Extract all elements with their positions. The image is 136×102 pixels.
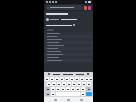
button[interactable]	[44, 50, 93, 53]
button[interactable]	[75, 77, 79, 81]
button[interactable]	[44, 47, 93, 50]
button[interactable]	[85, 77, 89, 81]
button[interactable]	[60, 77, 64, 81]
button[interactable]: Comma	[51, 92, 55, 96]
button[interactable]	[65, 77, 69, 81]
button[interactable]	[56, 87, 60, 91]
button[interactable]	[76, 87, 80, 91]
button[interactable]: Back	[54, 99, 57, 101]
button[interactable]	[62, 82, 66, 86]
button[interactable]	[45, 77, 49, 81]
button[interactable]	[44, 53, 93, 56]
button[interactable]	[44, 56, 93, 59]
button[interactable]	[72, 82, 76, 86]
button[interactable]	[47, 82, 51, 86]
button[interactable]	[87, 82, 91, 86]
button[interactable]: Send	[86, 92, 92, 96]
button[interactable]	[52, 82, 56, 86]
button[interactable]	[67, 82, 71, 86]
button[interactable]	[51, 87, 55, 91]
button[interactable]	[57, 82, 61, 86]
button[interactable]	[53, 74, 60, 75]
button[interactable]	[55, 77, 59, 81]
button[interactable]: Recents	[80, 99, 83, 101]
button[interactable]	[80, 77, 84, 81]
button[interactable]	[71, 87, 75, 91]
button[interactable]	[50, 77, 54, 81]
button[interactable]	[46, 23, 91, 27]
button[interactable]	[44, 35, 93, 38]
button[interactable]	[44, 38, 93, 41]
button[interactable]: Symbols	[45, 92, 50, 96]
button[interactable]: Home	[67, 99, 70, 101]
button[interactable]	[46, 5, 83, 10]
button[interactable]: Period	[81, 92, 85, 96]
button[interactable]	[76, 74, 84, 75]
button[interactable]: Menu	[88, 6, 91, 10]
button[interactable]	[77, 82, 81, 86]
button[interactable]	[44, 41, 93, 44]
button[interactable]	[81, 87, 85, 91]
button[interactable]	[82, 82, 86, 86]
button[interactable]: Backspace	[86, 87, 91, 91]
button[interactable]	[44, 32, 93, 35]
button[interactable]: Tabs	[84, 6, 87, 10]
button[interactable]	[44, 59, 93, 62]
button[interactable]	[44, 44, 93, 47]
button[interactable]	[61, 87, 65, 91]
button[interactable]	[90, 77, 92, 81]
button[interactable]: Shift	[45, 87, 50, 91]
button[interactable]	[66, 87, 70, 91]
button[interactable]	[70, 77, 74, 81]
button[interactable]	[46, 17, 91, 22]
